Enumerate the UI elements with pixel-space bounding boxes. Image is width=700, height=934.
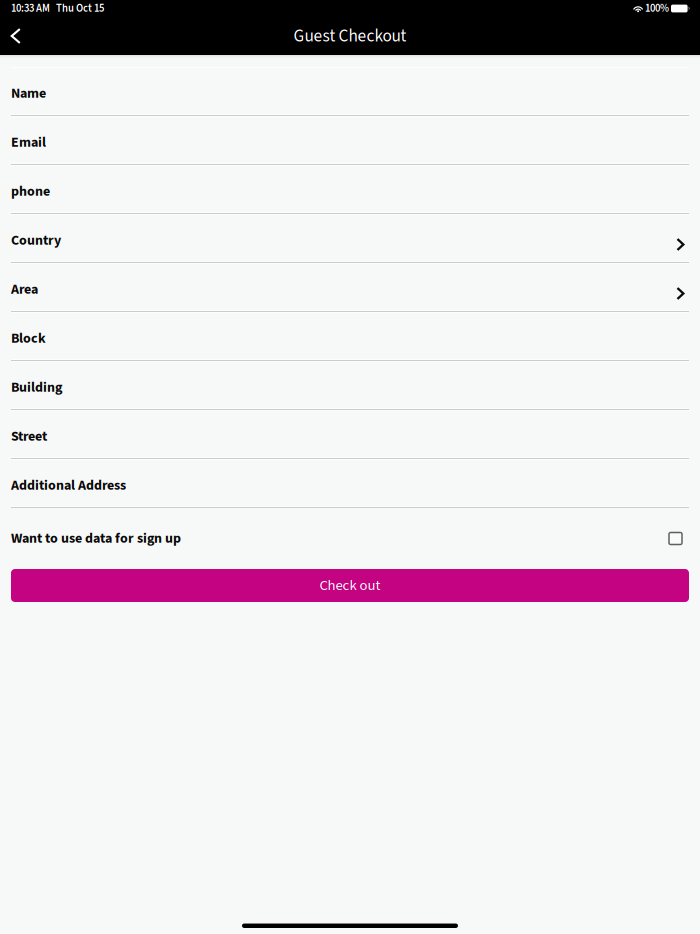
staticText: 100%: [643, 1, 671, 16]
staticText: Want to use data for sign up: [11, 528, 181, 548]
staticText: Guest Checkout: [293, 24, 406, 48]
staticText: Additional Address: [11, 475, 126, 495]
button[interactable]: Name: [0, 67, 700, 116]
staticText: Street: [11, 426, 47, 446]
staticText: Check out: [319, 575, 380, 596]
button[interactable]: Check out: [0, 569, 700, 602]
staticText: Area: [11, 279, 38, 299]
staticText: Email: [11, 132, 46, 152]
button[interactable]: Country: [0, 214, 700, 263]
staticText: Country: [11, 230, 61, 250]
button[interactable]: Block: [0, 312, 700, 361]
button[interactable]: Area: [0, 263, 700, 312]
staticText: Name: [11, 83, 46, 103]
button[interactable]: phone: [0, 165, 700, 214]
staticText: Block: [11, 328, 46, 348]
staticText: Building: [11, 377, 62, 397]
button[interactable]: Additional Address: [0, 459, 700, 508]
button[interactable]: Building: [0, 361, 700, 410]
staticText: phone: [11, 181, 50, 201]
button[interactable]: Email: [0, 116, 700, 165]
button[interactable]: Want to use data for sign up: [0, 508, 700, 569]
button[interactable]: Back: [0, 17, 31, 55]
button[interactable]: Street: [0, 410, 700, 459]
staticText: 10:33 AM Thu Oct 15: [11, 1, 104, 16]
